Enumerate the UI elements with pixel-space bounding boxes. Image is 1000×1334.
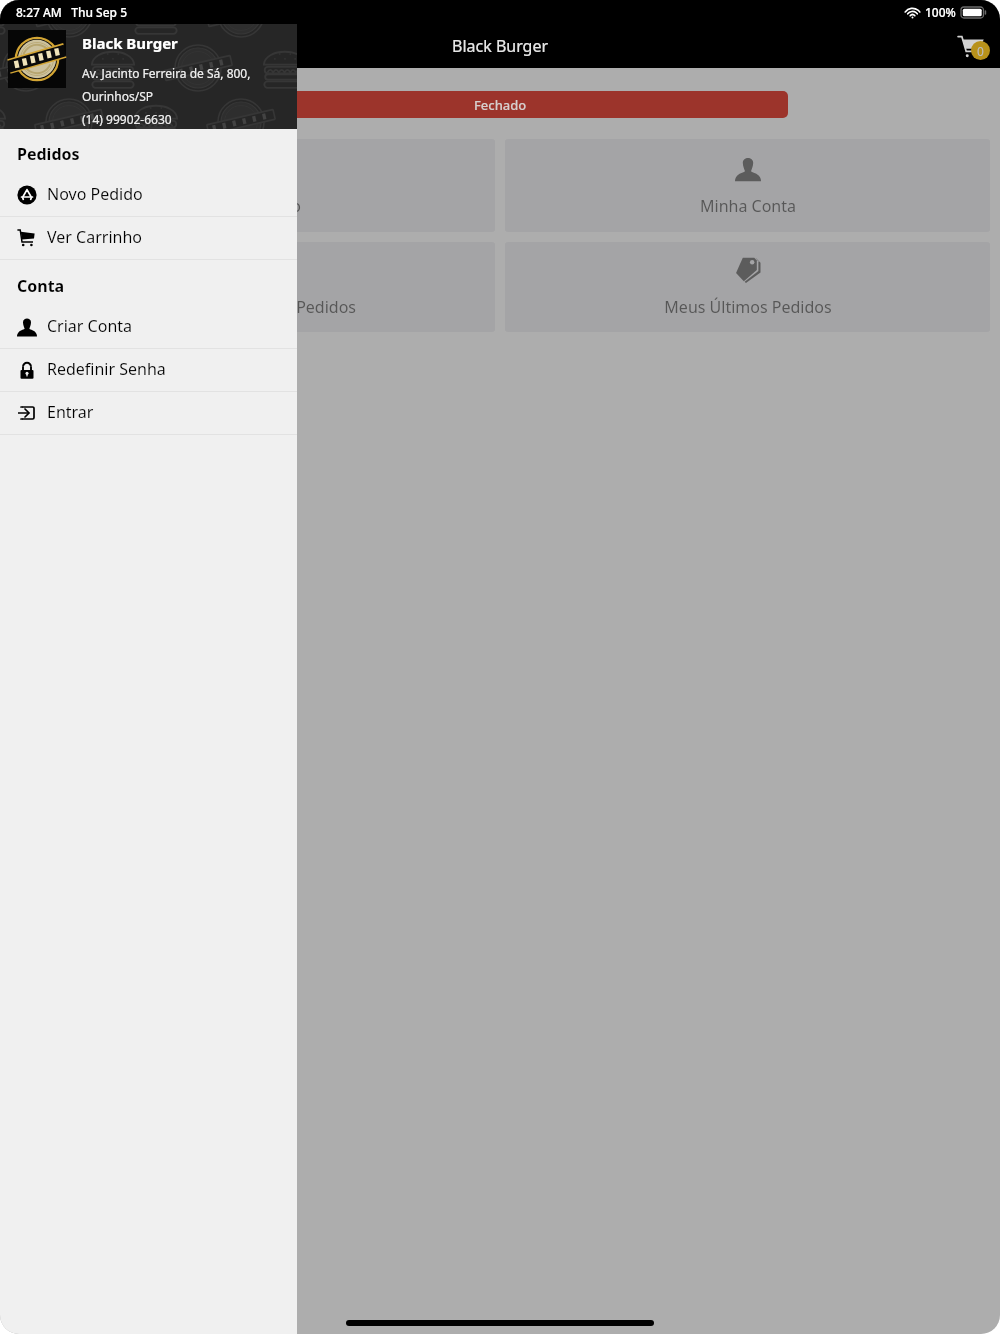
button[interactable]: Entrar [0, 392, 297, 434]
button[interactable]: Criar Conta [0, 306, 297, 348]
staticText: 8:27 AM Thu Sep 5 [16, 4, 128, 20]
staticText: Fechado [474, 96, 527, 114]
button[interactable]: Minha Conta [505, 139, 990, 232]
button[interactable]: Novo Pedido [10, 139, 495, 232]
staticText: 0 [977, 43, 984, 59]
staticText: Redefinir Senha [47, 358, 166, 380]
staticText: Acompanhar Meus Pedidos [150, 296, 356, 318]
staticText: Ourinhos/SP [82, 88, 153, 104]
staticText: Novo Pedido [47, 183, 143, 205]
staticText: Criar Conta [47, 315, 133, 337]
staticText: Black Burger [82, 33, 178, 53]
staticText: Ver Carrinho [47, 226, 142, 248]
button[interactable]: Cart [952, 25, 994, 67]
staticText: 100% [925, 4, 956, 20]
staticText: (14) 99902-6630 [82, 111, 172, 127]
staticText: Minha Conta [700, 195, 796, 217]
button[interactable]: Meus Últimos Pedidos [505, 242, 990, 332]
button[interactable]: Close navigation drawer [0, 0, 1000, 1334]
staticText: 8:27 AM Thu Sep 5 [16, 4, 128, 20]
staticText: Meus Últimos Pedidos [664, 296, 832, 318]
staticText: Av. Jacinto Ferreira de Sá, 800, [82, 65, 251, 81]
button[interactable]: Novo Pedido [0, 173, 297, 216]
button[interactable]: Ver Carrinho [0, 217, 297, 259]
button[interactable]: Fechado [212, 91, 788, 118]
staticText: Entrar [47, 401, 94, 423]
button[interactable]: Acompanhar Meus Pedidos [10, 242, 495, 332]
staticText: Black Burger [452, 35, 549, 57]
staticText: Conta [17, 275, 65, 297]
staticText: Pedidos [17, 143, 80, 165]
button[interactable]: Redefinir Senha [0, 349, 297, 391]
staticText: Novo Pedido [205, 195, 301, 217]
button[interactable]: Black Burger restaurant info [0, 24, 297, 129]
